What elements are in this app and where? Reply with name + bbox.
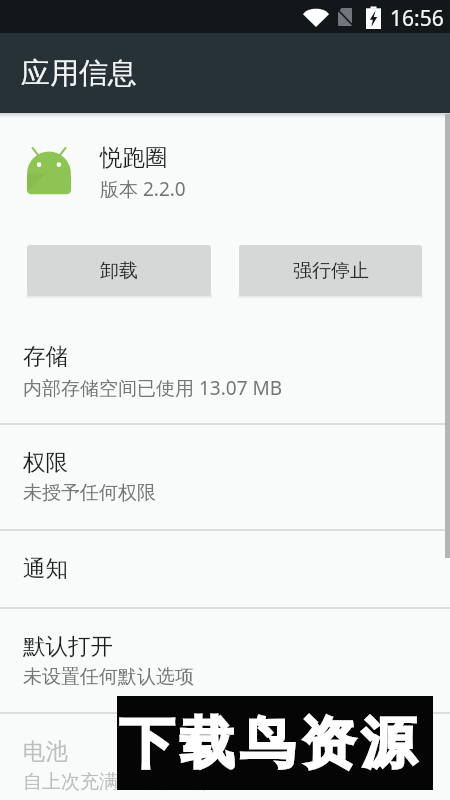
staticText: 未设置任何默认选项 bbox=[23, 665, 194, 689]
staticText: 权限 bbox=[23, 448, 68, 476]
other: Wi-Fi bbox=[303, 7, 329, 27]
staticText: 悦跑圈 bbox=[100, 143, 168, 171]
button[interactable]: 通知 bbox=[0, 529, 450, 607]
staticText: 下载鸟资源 bbox=[119, 709, 422, 778]
staticText: 电池 bbox=[23, 737, 68, 765]
staticText: 16:56 bbox=[390, 4, 444, 33]
staticText: 版本 2.2.0 bbox=[100, 176, 186, 202]
staticText: 强行停止 bbox=[293, 259, 369, 283]
button[interactable]: 默认打开 bbox=[0, 607, 450, 712]
staticText: 应用信息 bbox=[21, 55, 137, 92]
button[interactable]: 强行停止 bbox=[239, 245, 422, 296]
staticText: 存储 bbox=[23, 342, 68, 370]
button[interactable]: 权限 bbox=[0, 423, 450, 529]
other: Battery charging bbox=[366, 6, 381, 29]
staticText: 内部存储空间已使用 13.07 MB bbox=[23, 375, 283, 401]
button[interactable]: 卸载 bbox=[27, 245, 211, 296]
staticText: 未授予任何权限 bbox=[23, 481, 156, 505]
staticText: 默认打开 bbox=[23, 632, 113, 660]
button[interactable]: 存储 bbox=[0, 317, 450, 423]
staticText: 自上次充满电后未使用 bbox=[23, 770, 213, 794]
button[interactable]: 电池 bbox=[0, 712, 450, 800]
staticText: 卸载 bbox=[100, 259, 138, 283]
staticText: 通知 bbox=[23, 554, 68, 582]
other: No SIM card bbox=[338, 8, 352, 26]
